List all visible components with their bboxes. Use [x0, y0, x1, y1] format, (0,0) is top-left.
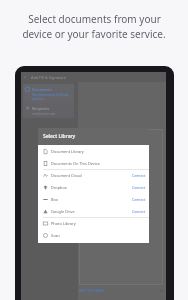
button[interactable]: Scan [38, 229, 149, 241]
button[interactable]: Dropbox [38, 181, 149, 193]
staticText: Dropbox [51, 185, 67, 190]
staticText: Add Fill & Signature [31, 75, 66, 80]
button[interactable]: Photo Library [38, 218, 149, 229]
button[interactable]: Google Drive [38, 205, 149, 217]
staticText: Document Library [51, 149, 84, 154]
staticText: Select documents from your [28, 12, 161, 26]
staticText: Recipients [32, 106, 50, 111]
button[interactable]: ADD DOCUMENT [78, 287, 166, 295]
staticText: Select Library [43, 133, 76, 140]
staticText: Connect [132, 185, 146, 190]
staticText: Document Cloud [51, 173, 82, 178]
other: Back [23, 75, 27, 79]
staticText: sign here [32, 97, 45, 101]
staticText: Connect [132, 197, 146, 202]
staticText: Documents [32, 87, 52, 92]
staticText: Select documents to fill and [32, 93, 69, 97]
staticText: device or your favorite service. [22, 27, 166, 41]
button[interactable]: Documents On This Device [38, 157, 149, 169]
other: Signature [159, 289, 163, 293]
staticText: me@domain.com [32, 112, 56, 116]
staticText: Scan [51, 233, 60, 238]
staticText: Box [51, 197, 58, 202]
staticText: Photo Library [51, 221, 76, 226]
button[interactable]: Document Library [38, 145, 149, 157]
staticText: ADD DOCUMENT [79, 289, 105, 293]
staticText: Connect [132, 173, 146, 178]
button[interactable]: Box [38, 193, 149, 205]
staticText: Documents On This Device [51, 161, 100, 166]
button[interactable]: Document Cloud [38, 170, 149, 181]
staticText: Google Drive [51, 209, 75, 214]
staticText: Connect [132, 209, 146, 214]
